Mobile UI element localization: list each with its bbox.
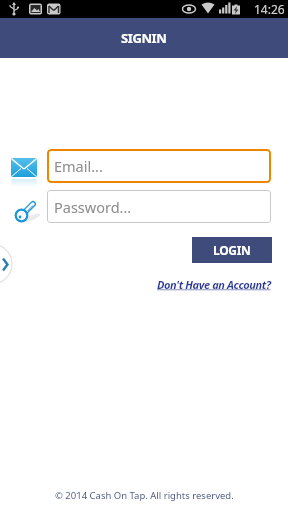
button[interactable] (0, 244, 13, 284)
staticText: 14:26 (254, 1, 285, 17)
button[interactable]: Password... (47, 190, 271, 223)
staticText: © 2014 Cash On Tap. All rights reserved. (55, 489, 234, 502)
staticText: SIGNIN (121, 29, 167, 47)
staticText: LOGIN (213, 242, 251, 258)
staticText: Password... (54, 197, 132, 217)
button[interactable]: Don't Have an Account? (150, 276, 278, 292)
staticText: Email... (54, 156, 103, 176)
button[interactable]: Email... (47, 149, 271, 183)
staticText: Don't Have an Account? (157, 277, 271, 292)
button[interactable]: LOGIN (192, 237, 272, 263)
